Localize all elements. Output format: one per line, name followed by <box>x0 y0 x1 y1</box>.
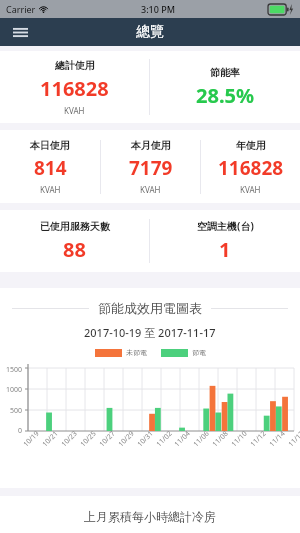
staticText: 11/14 <box>267 429 288 449</box>
staticText: 11/04 <box>172 429 193 449</box>
button[interactable]: 年使用 <box>201 139 300 195</box>
staticText: 10/25 <box>78 429 99 449</box>
staticText: 本月使用 <box>131 139 171 152</box>
staticText: KVAH <box>64 105 85 116</box>
staticText: KVAH <box>240 184 261 195</box>
button[interactable]: 總計使用 <box>0 59 149 116</box>
button[interactable]: 本月使用 <box>101 139 200 195</box>
staticText: 116828 <box>218 155 284 181</box>
staticText: Carrier <box>6 3 36 15</box>
staticText: 總覽 <box>136 23 164 41</box>
staticText: 節能率 <box>210 66 240 79</box>
staticText: 11/10 <box>229 429 250 449</box>
button[interactable]: 空調主機(台) <box>150 219 300 263</box>
staticText: 1000 <box>0 385 22 395</box>
staticText: 28.5% <box>196 82 254 109</box>
staticText: 10/31 <box>135 429 156 449</box>
staticText: 10/27 <box>97 429 118 449</box>
staticText: 500 <box>0 406 22 416</box>
staticText: 10/21 <box>40 429 61 449</box>
button[interactable]: Menu <box>7 19 33 45</box>
staticText: 116828 <box>40 75 109 102</box>
staticText: 11/17 <box>286 429 300 449</box>
staticText: 未節電 <box>126 348 147 357</box>
staticText: 3:10 PM <box>141 3 175 15</box>
staticText: 7179 <box>129 155 173 181</box>
staticText: 節能成效用電圖表 <box>98 300 202 316</box>
staticText: 11/06 <box>191 429 212 449</box>
staticText: 10/29 <box>116 429 137 449</box>
staticText: 年使用 <box>236 139 266 152</box>
staticText: KVAH <box>140 184 161 195</box>
staticText: 2017-10-19 至 2017-11-17 <box>84 325 216 340</box>
staticText: 88 <box>63 236 86 263</box>
button[interactable]: 節能率 <box>150 66 300 109</box>
button[interactable]: 已使用服務天數 <box>0 220 149 263</box>
staticText: 空調主機(台) <box>197 219 254 233</box>
staticText: 10/19 <box>21 429 42 449</box>
staticText: 總計使用 <box>55 59 95 72</box>
staticText: 已使用服務天數 <box>40 220 110 233</box>
staticText: 1500 <box>0 365 22 375</box>
staticText: 11/08 <box>210 429 231 449</box>
staticText: 1 <box>219 236 231 263</box>
staticText: 11/02 <box>154 429 175 449</box>
staticText: 11/12 <box>248 429 269 449</box>
staticText: 10/23 <box>59 429 80 449</box>
staticText: 節電 <box>192 348 206 357</box>
button[interactable]: 本日使用 <box>0 139 100 195</box>
staticText: 上月累積每小時總計冷房 <box>84 509 216 524</box>
staticText: 814 <box>34 155 67 181</box>
staticText: 本日使用 <box>30 139 70 152</box>
staticText: 0 <box>0 426 22 436</box>
staticText: KVAH <box>40 184 61 195</box>
